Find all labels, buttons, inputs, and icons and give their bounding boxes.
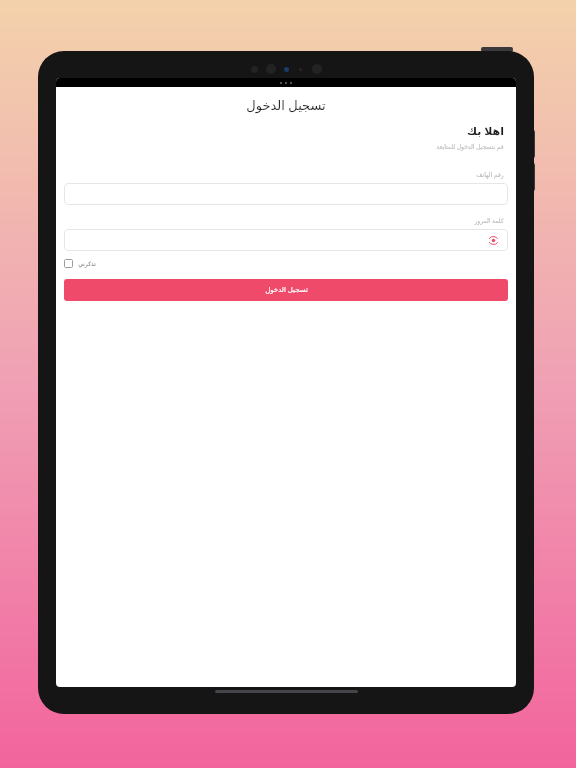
button[interactable]: تسجيل الدخول <box>64 279 508 301</box>
staticText: قم بتسجيل الدخول للمتابعة <box>436 143 504 151</box>
staticText: تسجيل الدخول <box>265 285 308 295</box>
button[interactable]: Show password <box>486 233 500 247</box>
button[interactable]: تذكرني <box>64 259 96 268</box>
staticText: كلمة المرور <box>474 217 504 225</box>
button[interactable] <box>64 183 508 205</box>
staticText: تسجيل الدخول <box>246 96 326 114</box>
staticText: اهلا بك <box>467 123 504 138</box>
staticText: تذكرني <box>78 260 96 267</box>
button[interactable]: Show password <box>64 229 508 251</box>
staticText: رقم الهاتف <box>476 171 504 179</box>
